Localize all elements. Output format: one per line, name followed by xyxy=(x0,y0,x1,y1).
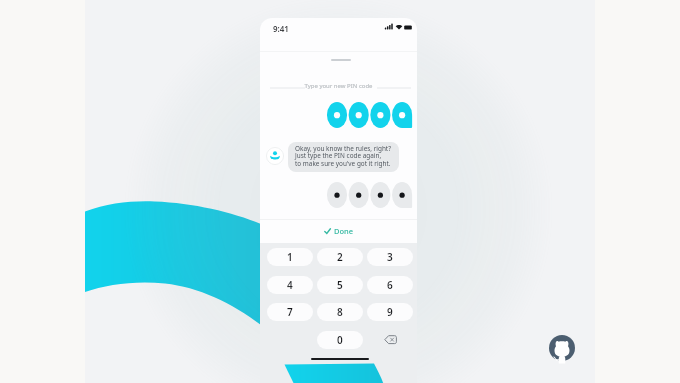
staticText: 9 xyxy=(387,305,393,319)
staticText: Okay, you know the rules, right? Just ty… xyxy=(295,144,391,168)
button[interactable]: Done xyxy=(260,220,417,242)
button[interactable]: 3 xyxy=(367,248,413,266)
staticText: 1 xyxy=(287,250,293,264)
staticText: Done xyxy=(334,226,354,236)
button[interactable]: 0 xyxy=(317,331,363,349)
button[interactable]: 8 xyxy=(317,303,363,321)
staticText: 3 xyxy=(387,250,393,264)
staticText: Type your new PIN code xyxy=(260,82,417,90)
button[interactable]: 4 xyxy=(267,276,313,294)
button[interactable]: 9 xyxy=(367,303,413,321)
button[interactable]: 6 xyxy=(367,276,413,294)
staticText: 4 xyxy=(287,278,293,292)
staticText: 6 xyxy=(387,278,393,292)
button[interactable]: 7 xyxy=(267,303,313,321)
staticText: 8 xyxy=(337,305,343,319)
staticText: 9:41 xyxy=(273,23,289,34)
staticText: 7 xyxy=(287,305,293,319)
button[interactable]: GitHub xyxy=(549,335,575,361)
staticText: 0 xyxy=(337,333,343,347)
button[interactable]: 2 xyxy=(317,248,363,266)
button[interactable]: Backspace xyxy=(367,331,413,349)
staticText: 2 xyxy=(337,250,343,264)
button[interactable]: 1 xyxy=(267,248,313,266)
staticText: 5 xyxy=(337,278,343,292)
button[interactable]: 5 xyxy=(317,276,363,294)
